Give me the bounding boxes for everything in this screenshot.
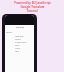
staticText: Camera input: [15, 41, 27, 43]
button[interactable]: Help: [15, 49, 34, 52]
staticText: About: [15, 47, 21, 49]
button[interactable]: About: [15, 46, 34, 49]
button[interactable]: Camera input: [15, 40, 34, 43]
staticText: Language: [15, 35, 24, 37]
staticText: Voice: [15, 44, 20, 46]
button[interactable]: Language: [15, 34, 34, 37]
staticText: Google Translate: [20, 5, 45, 9]
staticText: General: [6, 31, 34, 33]
staticText: Tutorial: [26, 9, 38, 13]
staticText: Help: [15, 50, 19, 52]
staticText: Offline: [15, 38, 21, 40]
button[interactable]: Voice: [15, 43, 34, 46]
staticText: Powered by BU JavaScript: [14, 1, 51, 5]
button[interactable]: Offline: [15, 37, 34, 40]
staticText: Settings: [16, 26, 24, 29]
